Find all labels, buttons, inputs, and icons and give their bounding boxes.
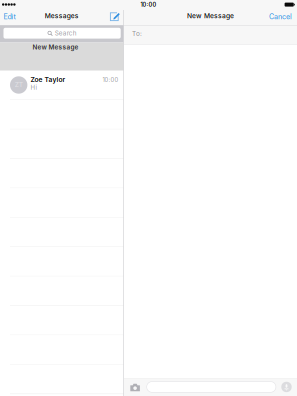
button[interactable]: Dictate bbox=[276, 382, 297, 392]
staticText: New Message bbox=[32, 43, 78, 51]
staticText: 10:00 bbox=[140, 1, 156, 8]
button[interactable]: ZT bbox=[0, 70, 123, 99]
staticText: Cancel bbox=[269, 12, 292, 21]
staticText: New Message bbox=[187, 12, 234, 20]
button[interactable]: Compose bbox=[110, 9, 123, 24]
staticText: Messages bbox=[45, 12, 79, 20]
button[interactable]: Cancel bbox=[269, 9, 297, 24]
staticText: ZT bbox=[15, 81, 23, 89]
staticText: Zoe Taylor bbox=[30, 76, 65, 84]
staticText: 10:00 bbox=[102, 76, 118, 83]
button[interactable]: Edit bbox=[0, 9, 15, 24]
staticText: Edit bbox=[3, 12, 15, 21]
button[interactable]: Search bbox=[0, 29, 123, 39]
button[interactable]: To: bbox=[124, 25, 297, 44]
button[interactable]: New Message bbox=[0, 42, 123, 70]
button[interactable]: Camera bbox=[124, 383, 140, 391]
staticText: Search bbox=[53, 29, 77, 37]
staticText: Hi bbox=[30, 84, 36, 91]
staticText: To: bbox=[132, 30, 142, 38]
